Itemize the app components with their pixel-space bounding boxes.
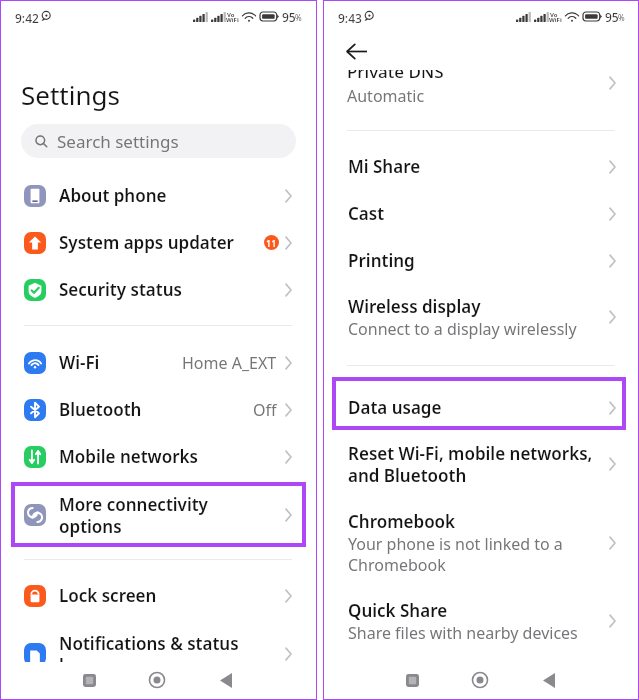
staticText: Bluetooth [59, 398, 142, 421]
button[interactable]: Mi Share [323, 155, 639, 178]
button[interactable]: About phone [0, 184, 317, 207]
staticText: Private DNS [347, 70, 444, 83]
staticText: Off [253, 399, 277, 421]
staticText: WiFi [226, 16, 239, 24]
staticText: 9:43 [338, 10, 362, 26]
staticText: Vo [227, 11, 235, 19]
staticText: Quick Share [348, 599, 448, 622]
staticText: Mobile networks [59, 445, 198, 468]
button[interactable]: Reset Wi-Fi, mobile networks, and Blueto… [323, 442, 639, 486]
staticText: Home A_EXT [182, 352, 277, 374]
staticText: 95 [605, 9, 619, 25]
button[interactable]: Mobile networks [0, 445, 317, 468]
staticText: 9:42 [15, 10, 39, 26]
button[interactable]: More connectivity options [0, 492, 317, 538]
button[interactable]: Notifications & status bar [0, 631, 317, 677]
staticText: Automatic [347, 85, 425, 107]
button[interactable]: Lock screen [0, 584, 317, 607]
staticText: Lock screen [59, 584, 157, 607]
staticText: Share files with nearby devices [348, 622, 578, 643]
staticText: Chromebook [348, 510, 456, 533]
button[interactable]: Back [528, 666, 570, 694]
button[interactable]: Chromebook [323, 510, 639, 576]
button[interactable]: Quick Share [323, 599, 639, 643]
staticText: Cast [348, 202, 385, 225]
button[interactable]: Bluetooth [0, 398, 317, 421]
staticText: Security status [59, 278, 182, 301]
staticText: Data usage [348, 396, 442, 419]
button[interactable]: Security status [0, 278, 317, 301]
button[interactable]: Printing [323, 249, 639, 272]
button[interactable]: Recent apps [391, 666, 433, 694]
staticText: Wi-Fi [59, 351, 100, 374]
staticText: % [295, 12, 302, 23]
button[interactable]: Recent apps [68, 666, 110, 694]
staticText: % [618, 12, 625, 23]
staticText: WiFi [549, 16, 562, 24]
staticText: Your phone is not linked to a Chromebook [348, 533, 563, 576]
staticText: Search settings [57, 130, 179, 153]
staticText: Vo [550, 11, 558, 19]
staticText: About phone [59, 184, 167, 207]
button[interactable]: Home [136, 666, 178, 694]
button[interactable]: Wi-Fi [0, 351, 317, 374]
button[interactable]: Back [338, 37, 374, 65]
button[interactable]: System apps updater [0, 231, 317, 254]
button[interactable]: Back [205, 666, 247, 694]
staticText: System apps updater [59, 231, 234, 254]
staticText: Wireless display [348, 295, 481, 318]
staticText: 11 [266, 237, 277, 249]
staticText: More connectivity options [59, 493, 208, 538]
staticText: Notifications & status bar [59, 632, 239, 677]
staticText: 95 [282, 9, 296, 25]
staticText: Mi Share [348, 155, 421, 178]
staticText: Printing [348, 249, 415, 272]
staticText: Settings [21, 77, 120, 112]
button[interactable]: Cast [323, 202, 639, 225]
button[interactable]: Wireless display [323, 295, 639, 339]
staticText: Connect to a display wirelessly [348, 318, 577, 339]
staticText: Reset Wi-Fi, mobile networks, and Blueto… [348, 442, 593, 486]
button[interactable]: Search settings [21, 124, 296, 158]
button[interactable]: Data usage [323, 396, 639, 419]
button[interactable]: Home [459, 666, 501, 694]
